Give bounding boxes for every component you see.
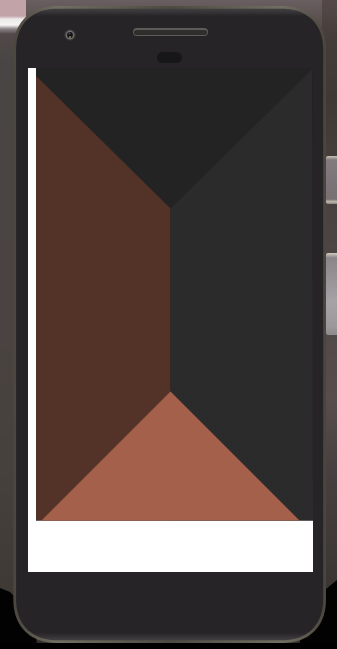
button[interactable]: Power button (326, 156, 337, 204)
button[interactable]: Volume buttons (326, 253, 337, 335)
button[interactable] (28, 68, 313, 572)
